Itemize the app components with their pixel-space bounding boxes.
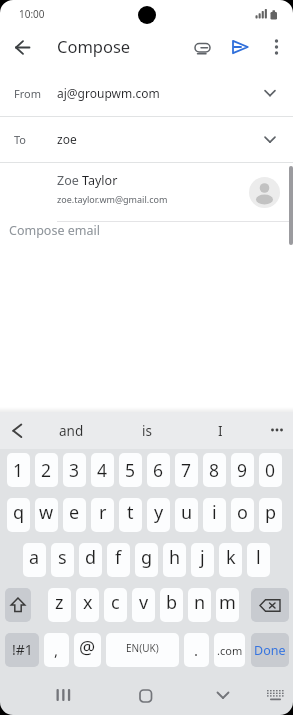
button[interactable]: e bbox=[63, 498, 86, 532]
button[interactable]: is bbox=[117, 412, 177, 449]
staticText: 3 bbox=[69, 458, 80, 482]
staticText: w bbox=[39, 500, 54, 525]
button[interactable]: To bbox=[0, 117, 293, 162]
staticText: p bbox=[265, 500, 277, 525]
staticText: f bbox=[115, 545, 122, 570]
button[interactable]: c bbox=[104, 588, 127, 622]
button[interactable]: q bbox=[7, 498, 30, 532]
button[interactable]: o bbox=[231, 498, 254, 532]
button[interactable]: Zoe Taylor bbox=[0, 163, 293, 221]
button[interactable]: u bbox=[175, 498, 198, 532]
button[interactable]: k bbox=[219, 543, 242, 577]
staticText: r bbox=[99, 500, 107, 525]
button[interactable]: 2 bbox=[35, 453, 58, 487]
staticText: and bbox=[59, 422, 84, 440]
button[interactable]: 1 bbox=[7, 453, 30, 487]
button[interactable]: and bbox=[41, 412, 101, 449]
button[interactable]: r bbox=[91, 498, 114, 532]
staticText: n bbox=[194, 590, 206, 615]
staticText: To bbox=[14, 132, 27, 147]
button[interactable]: x bbox=[76, 588, 99, 622]
staticText: t bbox=[127, 500, 134, 525]
button[interactable]: .com bbox=[214, 633, 245, 667]
button[interactable]: w bbox=[35, 498, 58, 532]
button[interactable]: 8 bbox=[203, 453, 226, 487]
button[interactable]: , bbox=[44, 633, 69, 667]
button[interactable] bbox=[260, 678, 292, 710]
button[interactable]: n bbox=[188, 588, 211, 622]
staticText: g bbox=[141, 545, 153, 570]
button[interactable]: 4 bbox=[91, 453, 114, 487]
button[interactable] bbox=[4, 414, 36, 446]
staticText: From bbox=[14, 86, 41, 101]
button[interactable]: a bbox=[23, 543, 46, 577]
staticText: 6 bbox=[153, 458, 164, 482]
staticText: y bbox=[154, 500, 164, 525]
button[interactable]: g bbox=[135, 543, 158, 577]
button[interactable] bbox=[48, 678, 80, 710]
staticText: 5 bbox=[125, 458, 136, 482]
button[interactable]: m bbox=[216, 588, 239, 622]
button[interactable]: 3 bbox=[63, 453, 86, 487]
button[interactable] bbox=[251, 588, 289, 622]
staticText: 1 bbox=[13, 458, 24, 482]
staticText: Done bbox=[254, 642, 286, 659]
staticText: Compose bbox=[57, 35, 131, 57]
button[interactable]: p bbox=[259, 498, 282, 532]
button[interactable]: b bbox=[160, 588, 183, 622]
button[interactable]: 0 bbox=[259, 453, 282, 487]
button[interactable]: 5 bbox=[119, 453, 142, 487]
button[interactable] bbox=[227, 33, 255, 61]
staticText: @ bbox=[79, 635, 96, 660]
button[interactable]: . bbox=[184, 633, 209, 667]
staticText: c bbox=[111, 590, 120, 615]
button[interactable]: EN(UK) bbox=[106, 633, 179, 667]
button[interactable]: i bbox=[203, 498, 226, 532]
staticText: q bbox=[13, 500, 25, 525]
button[interactable] bbox=[262, 33, 290, 61]
button[interactable]: 9 bbox=[231, 453, 254, 487]
staticText: 10:00 bbox=[19, 7, 45, 21]
staticText: b bbox=[166, 590, 178, 615]
button[interactable]: s bbox=[51, 543, 74, 577]
staticText: 4 bbox=[97, 458, 108, 482]
button[interactable] bbox=[261, 414, 293, 446]
button[interactable]: j bbox=[191, 543, 214, 577]
staticText: 2 bbox=[41, 458, 52, 482]
button[interactable]: l bbox=[247, 543, 270, 577]
button[interactable]: h bbox=[163, 543, 186, 577]
staticText: EN(UK) bbox=[126, 641, 159, 655]
staticText: o bbox=[237, 500, 248, 525]
staticText: 8 bbox=[209, 458, 220, 482]
button[interactable] bbox=[130, 678, 162, 710]
button[interactable]: f bbox=[107, 543, 130, 577]
button[interactable] bbox=[207, 678, 239, 710]
button[interactable]: !#1 bbox=[5, 633, 39, 667]
staticText: s bbox=[58, 545, 67, 570]
staticText: zoe.taylor.wm@gmail.com bbox=[57, 193, 168, 205]
staticText: , bbox=[54, 640, 59, 660]
staticText: 7 bbox=[181, 458, 192, 482]
button[interactable]: t bbox=[119, 498, 142, 532]
button[interactable] bbox=[188, 33, 216, 61]
button[interactable]: d bbox=[79, 543, 102, 577]
button[interactable]: I bbox=[190, 412, 250, 449]
staticText: m bbox=[219, 590, 236, 615]
staticText: l bbox=[256, 545, 261, 570]
button[interactable]: v bbox=[132, 588, 155, 622]
button[interactable]: 7 bbox=[175, 453, 198, 487]
button[interactable]: Done bbox=[251, 633, 289, 667]
button[interactable]: From bbox=[0, 75, 293, 112]
staticText: is bbox=[142, 422, 152, 440]
button[interactable]: Compose email bbox=[0, 222, 293, 250]
staticText: u bbox=[181, 500, 193, 525]
button[interactable]: @ bbox=[74, 633, 101, 667]
staticText: 0 bbox=[265, 458, 276, 482]
button[interactable] bbox=[5, 588, 31, 622]
staticText: !#1 bbox=[12, 640, 33, 659]
staticText: Compose email bbox=[9, 222, 100, 239]
button[interactable]: y bbox=[147, 498, 170, 532]
button[interactable]: 6 bbox=[147, 453, 170, 487]
button[interactable]: z bbox=[48, 588, 71, 622]
button[interactable] bbox=[8, 33, 36, 61]
